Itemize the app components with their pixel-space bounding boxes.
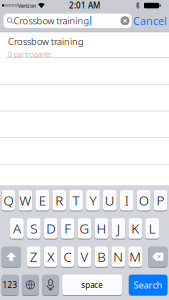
staticText: Crossbow training	[13, 15, 89, 27]
staticText: C	[63, 248, 71, 265]
button[interactable]: E	[35, 190, 49, 210]
button[interactable]: L	[145, 218, 159, 239]
button[interactable]: G	[78, 218, 91, 239]
button[interactable]: Dictate	[42, 275, 59, 295]
button[interactable]: T	[69, 190, 83, 210]
staticText: A	[13, 220, 21, 237]
button[interactable]: J	[111, 218, 125, 239]
staticText: U	[105, 191, 115, 209]
button[interactable]: Next keyboard	[22, 275, 39, 295]
staticText: Verizon	[18, 2, 36, 9]
staticText: Y	[89, 191, 96, 209]
button[interactable]: Q	[2, 190, 15, 210]
staticText: Cancel	[133, 14, 167, 28]
button[interactable]: R	[52, 190, 66, 210]
button[interactable]: S	[27, 218, 41, 239]
staticText: G	[79, 220, 89, 237]
staticText: 2:01 AM	[69, 0, 100, 11]
staticText: Search	[134, 279, 163, 291]
button[interactable]: I	[120, 190, 134, 210]
button[interactable]: X	[44, 246, 57, 267]
button[interactable]: Cancel	[131, 13, 169, 28]
button[interactable]: Search	[129, 275, 167, 295]
staticText: X	[47, 248, 54, 265]
button[interactable]: P	[154, 190, 167, 210]
staticText: T	[72, 191, 79, 209]
button[interactable]: K	[128, 218, 142, 239]
staticText: K	[131, 220, 139, 237]
button[interactable]: N	[111, 246, 125, 267]
staticText: W	[19, 191, 31, 209]
button[interactable]: U	[103, 190, 117, 210]
button[interactable]: V	[78, 246, 91, 267]
button[interactable]: H	[95, 218, 108, 239]
staticText: H	[96, 220, 106, 237]
button[interactable]: Shift	[2, 246, 21, 267]
button[interactable]: F	[61, 218, 74, 239]
staticText: Q	[3, 191, 13, 209]
staticText: O	[139, 191, 149, 209]
staticText: space	[81, 279, 103, 290]
button[interactable]: W	[18, 190, 32, 210]
staticText: L	[149, 220, 156, 237]
button[interactable]: D	[44, 218, 58, 239]
button[interactable]: Delete	[148, 246, 167, 267]
button[interactable]: space	[62, 275, 122, 295]
staticText: R	[55, 191, 63, 209]
button[interactable]: A	[10, 218, 24, 239]
staticText: Crossbow training	[8, 35, 84, 47]
staticText: S	[30, 220, 37, 237]
staticText: D	[46, 220, 55, 237]
button[interactable]: B	[94, 246, 108, 267]
staticText: J	[117, 220, 120, 237]
button[interactable]: C	[61, 246, 74, 267]
staticText: F	[64, 220, 71, 237]
button[interactable]: Y	[86, 190, 100, 210]
staticText: B	[97, 248, 105, 265]
staticText: E	[39, 191, 46, 209]
staticText: 123	[2, 279, 17, 290]
staticText: M	[129, 248, 141, 265]
staticText: I	[125, 191, 129, 209]
button[interactable]: Crossbow training	[8, 34, 158, 59]
button[interactable]: Numbers	[2, 275, 18, 295]
button[interactable]: M	[128, 246, 142, 267]
staticText: Z	[30, 248, 38, 265]
staticText: N	[113, 248, 123, 265]
staticText: 0 participants	[8, 50, 51, 59]
button[interactable]: O	[137, 190, 150, 210]
staticText: V	[80, 248, 88, 265]
button[interactable]: Z	[27, 246, 41, 267]
staticText: P	[156, 191, 164, 209]
button[interactable]: Clear text	[120, 16, 129, 25]
